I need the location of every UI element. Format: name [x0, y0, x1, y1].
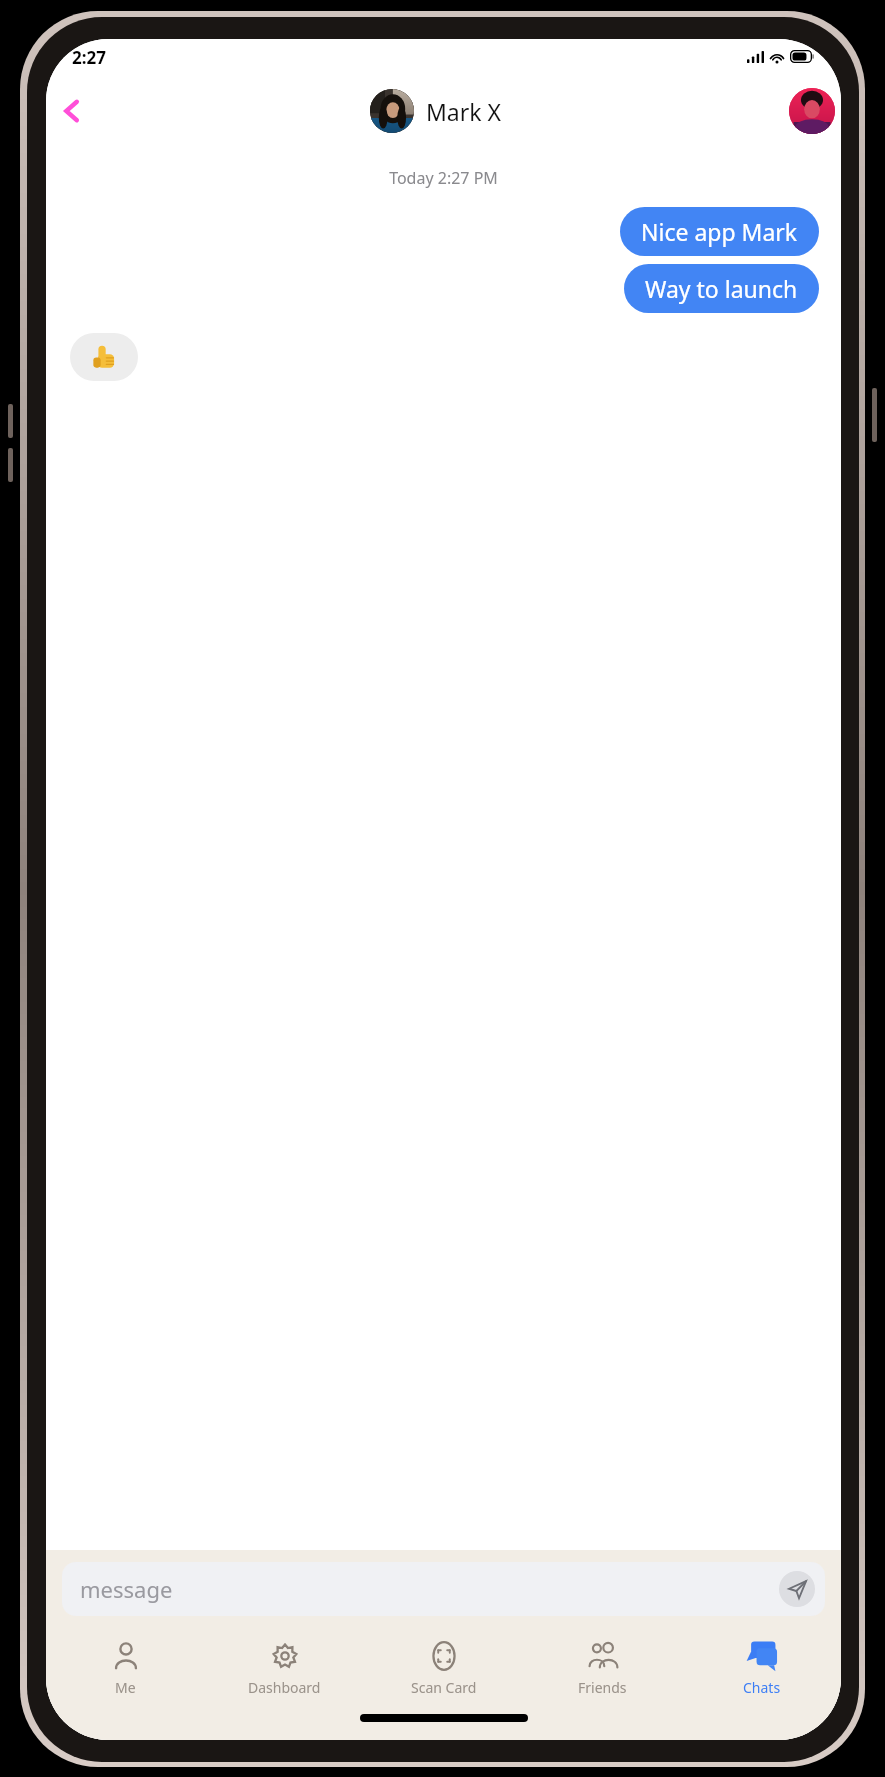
staticText: Mark X [426, 96, 502, 127]
button[interactable]: Profile [787, 86, 837, 136]
button[interactable]: Me [46, 1632, 205, 1704]
button[interactable]: Friends [523, 1632, 682, 1704]
button[interactable]: Way to launch [624, 264, 819, 313]
staticText: Chats [743, 1678, 781, 1697]
button[interactable]: Thumbs up reaction [70, 333, 138, 381]
button[interactable]: Chats [682, 1632, 841, 1704]
staticText: Dashboard [248, 1678, 321, 1697]
staticText: Scan Card [411, 1678, 477, 1697]
button[interactable]: Send [779, 1571, 815, 1607]
button[interactable]: message [62, 1562, 825, 1616]
button[interactable]: Dashboard [205, 1632, 364, 1704]
button[interactable]: Back [46, 85, 98, 137]
staticText: Me [115, 1678, 136, 1697]
staticText: message [80, 1574, 173, 1604]
button[interactable]: Nice app Mark [620, 207, 819, 256]
staticText: Way to launch [645, 273, 798, 304]
staticText: Friends [578, 1678, 627, 1697]
staticText: Today 2:27 PM [46, 167, 841, 189]
button[interactable]: Scan Card [364, 1632, 523, 1704]
staticText: 2:27 [72, 46, 106, 69]
staticText: Nice app Mark [641, 216, 798, 247]
